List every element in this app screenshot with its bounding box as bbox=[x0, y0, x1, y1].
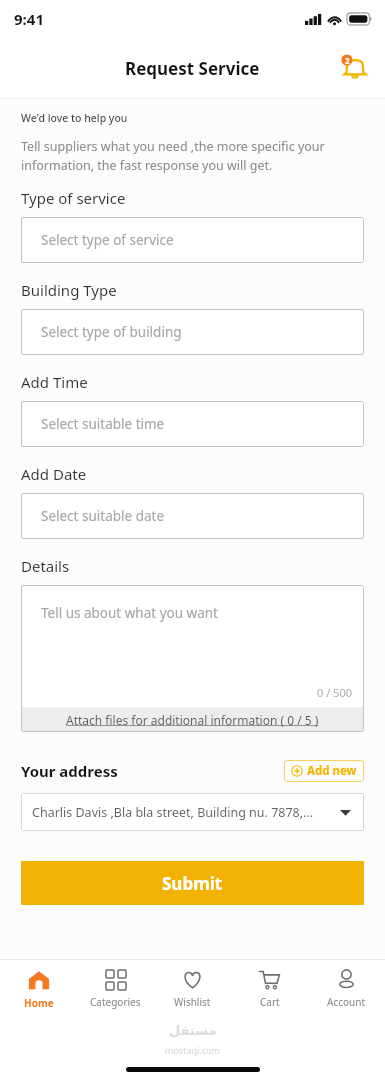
staticText: Cart bbox=[260, 995, 280, 1009]
button[interactable]: Select suitable date bbox=[21, 493, 364, 539]
button[interactable]: Tell us about what you want bbox=[21, 585, 364, 707]
staticText: Type of service bbox=[21, 188, 126, 208]
button[interactable]: Select suitable time bbox=[21, 401, 364, 447]
staticText: Tell suppliers what you need ,the more s… bbox=[21, 138, 364, 174]
staticText: Your address bbox=[21, 761, 118, 781]
staticText: Tell us about what you want bbox=[41, 604, 218, 622]
staticText: mostaqi.com bbox=[165, 1044, 220, 1056]
staticText: Wishlist bbox=[174, 995, 211, 1009]
button[interactable]: Submit bbox=[21, 861, 364, 905]
button[interactable]: Cart bbox=[231, 963, 308, 1015]
button[interactable]: Select type of building bbox=[21, 309, 364, 355]
staticText: Select suitable date bbox=[41, 507, 164, 525]
staticText: Add new bbox=[307, 763, 357, 779]
staticText: We'd love to help you bbox=[21, 111, 128, 125]
button[interactable]: Account bbox=[308, 963, 385, 1015]
button[interactable]: Add new bbox=[284, 760, 364, 782]
staticText: Request Service bbox=[125, 57, 260, 80]
staticText: Add Time bbox=[21, 372, 88, 392]
button[interactable]: Select type of service bbox=[21, 217, 364, 263]
staticText: مستقل bbox=[169, 1023, 217, 1038]
staticText: 0 / 500 bbox=[317, 685, 352, 700]
staticText: Charlis Davis ,Bla bla street, Building … bbox=[32, 804, 340, 821]
staticText: Select suitable time bbox=[41, 415, 165, 433]
staticText: Select type of building bbox=[41, 323, 182, 341]
staticText: Add Date bbox=[21, 464, 87, 484]
staticText: Categories bbox=[90, 995, 141, 1009]
button[interactable]: Wishlist bbox=[154, 963, 231, 1015]
button[interactable]: Charlis Davis ,Bla bla street, Building … bbox=[21, 793, 364, 831]
staticText: Submit bbox=[162, 872, 223, 895]
staticText: Account bbox=[327, 995, 366, 1009]
button[interactable]: Notifications bbox=[337, 51, 371, 85]
staticText: Details bbox=[21, 556, 70, 576]
staticText: Building Type bbox=[21, 280, 117, 300]
staticText: 9:41 bbox=[14, 9, 44, 29]
staticText: Select type of service bbox=[41, 231, 174, 249]
staticText: Attach files for additional information … bbox=[66, 712, 319, 728]
button[interactable]: Home bbox=[0, 963, 77, 1016]
button[interactable]: Categories bbox=[77, 964, 154, 1015]
staticText: 2 bbox=[345, 55, 350, 66]
staticText: Home bbox=[24, 996, 54, 1010]
button[interactable]: Attach files for additional information … bbox=[21, 707, 364, 732]
